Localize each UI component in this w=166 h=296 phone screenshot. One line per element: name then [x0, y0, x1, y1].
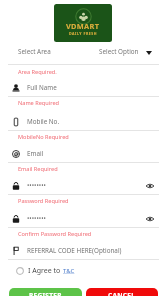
button[interactable]: Toggle password visibility	[143, 179, 157, 193]
button[interactable]	[0, 44, 83, 64]
staticText: Area Required.	[18, 68, 57, 76]
button[interactable]: REGISTER	[9, 288, 82, 296]
staticText: Name Required	[18, 99, 59, 107]
button[interactable]: Toggle password visibility	[143, 212, 157, 226]
staticText: DAILY FRESH	[69, 31, 98, 36]
staticText: Mobile No.	[27, 117, 60, 126]
staticText: I Agree to	[28, 266, 63, 276]
staticText: Full Name	[27, 83, 57, 92]
staticText: ••••••••	[27, 214, 46, 223]
staticText: Email	[27, 149, 44, 158]
staticText: MobileNo Required	[18, 133, 69, 141]
button[interactable]: Select Option	[95, 44, 159, 64]
staticText: T&C	[63, 267, 75, 275]
button[interactable]: CANCEL	[86, 288, 158, 296]
staticText: Email Required	[18, 165, 58, 173]
staticText: Password Required	[18, 197, 69, 205]
button[interactable]: I Agree to	[16, 264, 75, 278]
staticText: REGISTER	[29, 291, 62, 296]
staticText: Confirm Password Required	[18, 230, 92, 238]
staticText: CANCEL	[108, 291, 136, 296]
staticText: ••••••••	[27, 181, 46, 190]
staticText: Select Option	[99, 47, 139, 56]
staticText: VDMART	[66, 21, 100, 31]
staticText: Select Area	[18, 47, 51, 56]
staticText: REFERRAL CODE HERE(Optional)	[27, 246, 122, 255]
